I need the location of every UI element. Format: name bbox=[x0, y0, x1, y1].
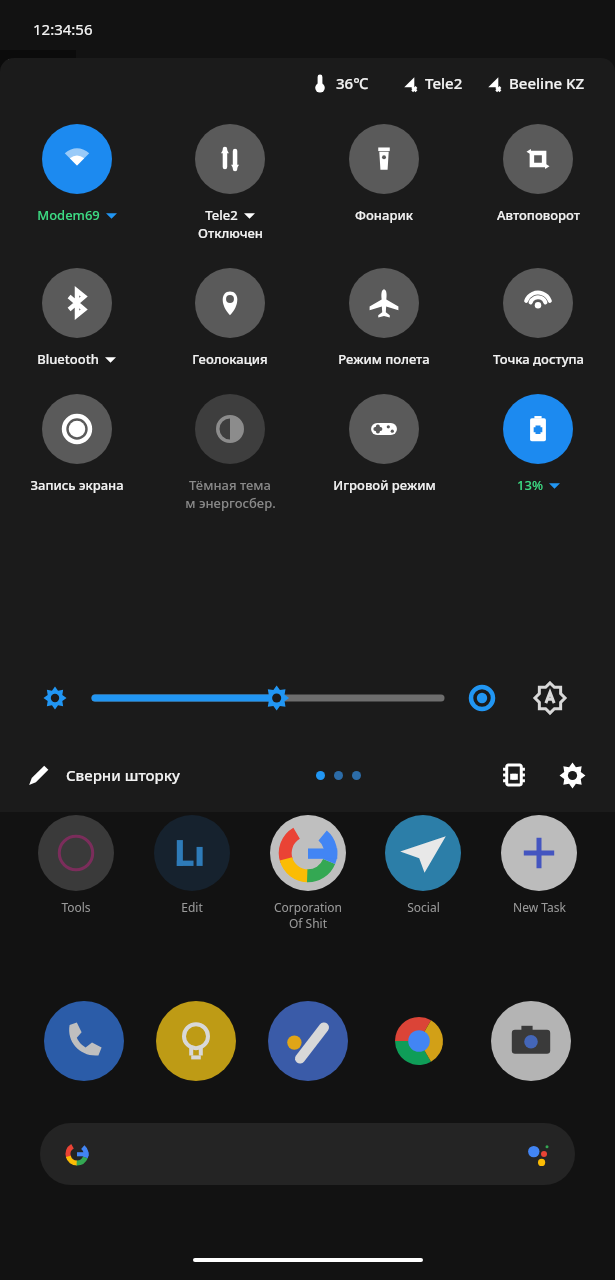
button[interactable]: Edit bbox=[140, 815, 244, 915]
button[interactable]: Tele2 bbox=[153, 122, 307, 244]
button[interactable]: App bbox=[491, 1001, 571, 1081]
button[interactable]: App bbox=[44, 1001, 124, 1081]
button[interactable]: Low brightness bbox=[40, 683, 70, 713]
button[interactable] bbox=[40, 1123, 575, 1185]
staticText: Beeline KZ bbox=[509, 73, 585, 93]
button[interactable]: Settings bbox=[555, 758, 589, 792]
staticText: Игровой режим bbox=[333, 476, 436, 494]
staticText: Social bbox=[407, 899, 440, 915]
button[interactable]: Auto brightness bbox=[533, 681, 567, 715]
staticText: Фонарик bbox=[355, 206, 413, 224]
staticText: Отключен bbox=[198, 224, 263, 242]
button[interactable]: Запись экрана bbox=[0, 392, 153, 496]
staticText: Тёмная тема bbox=[189, 476, 271, 494]
button[interactable]: Тёмная тема bbox=[153, 392, 307, 514]
button[interactable] bbox=[95, 685, 441, 711]
staticText: Tele2 bbox=[425, 73, 463, 93]
button[interactable]: High brightness bbox=[467, 683, 497, 713]
staticText: Corporation Of Shit bbox=[274, 899, 342, 931]
staticText: 12:34:56 bbox=[33, 19, 93, 39]
button[interactable]: Corporation Of Shit bbox=[256, 815, 360, 931]
button[interactable]: Точка доступа bbox=[461, 266, 615, 370]
staticText: 13% bbox=[517, 476, 543, 494]
button[interactable]: Tools bbox=[24, 815, 128, 915]
staticText: New Task bbox=[513, 899, 566, 915]
button[interactable]: App bbox=[379, 1001, 459, 1081]
staticText: Сверни шторку bbox=[66, 765, 180, 785]
button[interactable]: Режим полета bbox=[307, 266, 461, 370]
button[interactable]: App bbox=[268, 1001, 348, 1081]
button[interactable]: Сверни шторку bbox=[26, 762, 180, 788]
button[interactable]: Игровой режим bbox=[307, 392, 461, 496]
staticText: Точка доступа bbox=[493, 350, 584, 368]
button[interactable]: Social bbox=[371, 815, 475, 915]
staticText: Tele2 bbox=[205, 206, 238, 224]
button[interactable]: 13% bbox=[461, 392, 615, 496]
staticText: 36℃ bbox=[336, 73, 369, 93]
button[interactable]: New Task bbox=[487, 815, 591, 915]
button[interactable]: Bluetooth bbox=[0, 266, 153, 370]
staticText: Запись экрана bbox=[30, 476, 124, 494]
button[interactable]: Device info bbox=[497, 758, 531, 792]
staticText: fps: 54.3 bbox=[6, 54, 70, 76]
staticText: Modem69 bbox=[37, 206, 100, 224]
button[interactable]: App bbox=[156, 1001, 236, 1081]
button[interactable]: Автоповорот bbox=[461, 122, 615, 226]
staticText: м энергосбер. bbox=[185, 494, 276, 512]
staticText: Автоповорот bbox=[497, 206, 580, 224]
staticText: Геолокация bbox=[192, 350, 268, 368]
staticText: Tools bbox=[61, 899, 91, 915]
staticText: Режим полета bbox=[338, 350, 430, 368]
staticText: Bluetooth bbox=[37, 350, 99, 368]
button[interactable]: Фонарик bbox=[307, 122, 461, 226]
staticText: Edit bbox=[181, 899, 203, 915]
button[interactable]: Геолокация bbox=[153, 266, 307, 370]
button[interactable]: Modem69 bbox=[0, 122, 153, 226]
